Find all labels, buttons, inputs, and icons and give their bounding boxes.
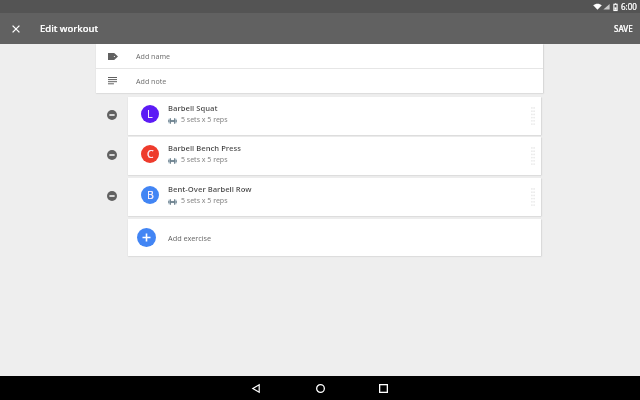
staticText: SAVE xyxy=(614,23,633,34)
staticText: Barbell Squat xyxy=(168,103,218,113)
button[interactable]: Add exercise xyxy=(128,219,541,256)
staticText: 5 sets x 5 reps xyxy=(181,155,228,165)
staticText: B xyxy=(147,188,154,202)
button[interactable]: Remove Bent-Over Barbell Row xyxy=(103,187,121,205)
button[interactable]: Add note xyxy=(96,69,543,93)
button[interactable]: C xyxy=(128,137,541,175)
staticText: Add exercise xyxy=(168,233,212,243)
button[interactable]: SAVE xyxy=(607,17,640,40)
button[interactable]: Reorder Bent-Over Barbell Row xyxy=(526,178,540,216)
staticText: 5 sets x 5 reps xyxy=(181,196,228,206)
staticText: Barbell Bench Press xyxy=(168,143,241,153)
button[interactable]: Remove Barbell Squat xyxy=(103,106,121,124)
staticText: 6:00 xyxy=(621,1,637,12)
staticText: L xyxy=(147,107,153,121)
button[interactable]: Close xyxy=(4,17,28,41)
button[interactable]: B xyxy=(128,178,541,216)
button[interactable]: Remove Barbell Bench Press xyxy=(103,146,121,164)
staticText: 5 sets x 5 reps xyxy=(181,115,228,125)
button[interactable]: Add name xyxy=(96,44,543,68)
staticText: Add name xyxy=(136,51,171,61)
button[interactable]: Home xyxy=(308,376,332,400)
staticText: C xyxy=(147,147,154,161)
staticText: Add note xyxy=(136,76,167,86)
button[interactable]: Reorder Barbell Bench Press xyxy=(526,137,540,175)
button[interactable]: Back xyxy=(244,376,268,400)
staticText: Edit workout xyxy=(40,22,99,35)
button[interactable]: Recents xyxy=(371,376,395,400)
button[interactable]: Reorder Barbell Squat xyxy=(526,97,540,135)
staticText: Bent-Over Barbell Row xyxy=(168,184,252,194)
button[interactable]: L xyxy=(128,97,541,135)
